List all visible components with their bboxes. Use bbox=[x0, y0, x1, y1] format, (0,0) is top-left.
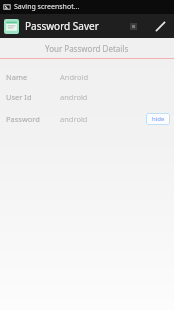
button[interactable]: Edit bbox=[148, 14, 172, 38]
button[interactable]: Name bbox=[0, 70, 174, 83]
button[interactable]: Save bbox=[122, 15, 144, 37]
staticText: User Id bbox=[6, 92, 32, 102]
staticText: Android bbox=[60, 72, 89, 82]
button[interactable]: hide bbox=[146, 113, 170, 125]
staticText: Password Saver bbox=[25, 19, 99, 33]
button[interactable]: User Id bbox=[0, 90, 174, 103]
staticText: Your Password Details bbox=[45, 43, 129, 54]
staticText: android bbox=[60, 92, 88, 102]
staticText: Name bbox=[6, 72, 28, 82]
button[interactable]: App icon bbox=[4, 19, 19, 34]
staticText: hide bbox=[152, 115, 165, 123]
staticText: Saving screenshot… bbox=[14, 2, 80, 12]
staticText: Password bbox=[6, 114, 40, 124]
staticText: android bbox=[60, 114, 88, 124]
